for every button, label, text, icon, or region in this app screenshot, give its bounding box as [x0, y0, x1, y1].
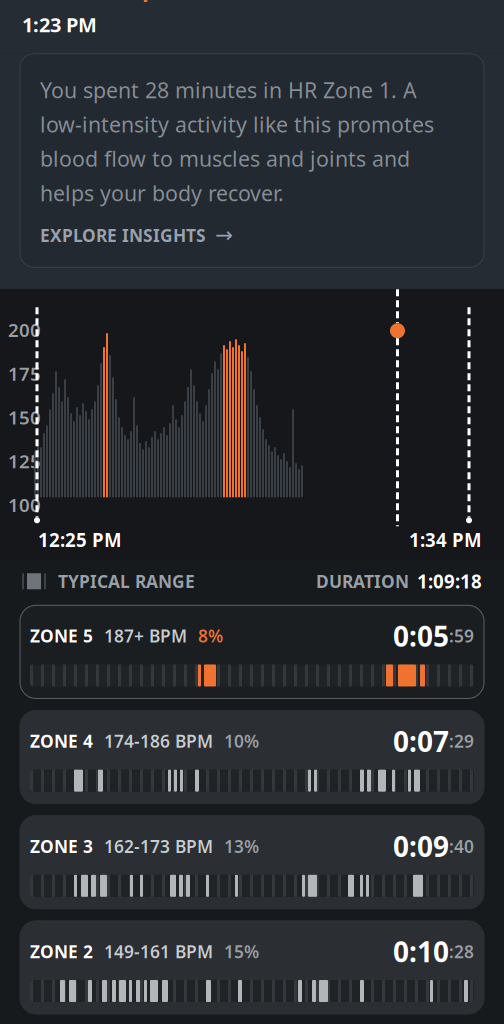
staticText: 175 — [8, 361, 41, 386]
staticText: 0:07 — [393, 722, 449, 760]
staticText: 100 — [8, 492, 41, 517]
staticText: :28 — [449, 940, 474, 963]
button[interactable]: ZONE 5 — [20, 605, 484, 698]
button[interactable]: ZONE 4 — [20, 710, 484, 804]
staticText: 149-161 BPM — [104, 940, 213, 963]
button[interactable]: You spent 28 minutes in HR Zone 1. A low… — [20, 54, 484, 267]
staticText: 125 — [8, 449, 41, 473]
staticText: :40 — [449, 835, 474, 858]
staticText: 1:09:18 — [417, 569, 482, 594]
staticText: 1:34 PM — [409, 527, 482, 552]
staticText: bpm — [128, 0, 178, 2]
staticText: 162-173 BPM — [104, 835, 213, 858]
staticText: TYPICAL RANGE — [58, 570, 195, 593]
staticText: 0:09 — [393, 828, 449, 865]
staticText: ZONE 3 — [30, 835, 93, 858]
staticText: You spent 28 minutes in HR Zone 1. A low… — [40, 76, 434, 207]
button[interactable]: ZONE 3 — [20, 816, 484, 909]
staticText: 174-186 BPM — [104, 729, 213, 752]
staticText: ZONE 5 — [30, 624, 93, 647]
staticText: :29 — [449, 729, 474, 752]
staticText: 13% — [224, 835, 259, 858]
staticText: 187+ BPM — [104, 624, 187, 647]
staticText: → — [215, 223, 233, 247]
staticText: :59 — [449, 624, 474, 647]
staticText: 200 — [8, 317, 41, 342]
staticText: DURATION — [316, 570, 409, 593]
button[interactable]: ZONE 2 — [20, 921, 484, 1014]
staticText: ZONE 4 — [30, 729, 93, 752]
staticText: 15% — [224, 940, 259, 963]
staticText: ZONE 2 — [30, 940, 93, 963]
staticText: 150 — [8, 405, 41, 430]
staticText: 0:10 — [393, 933, 449, 970]
staticText: 12:25 PM — [38, 527, 122, 552]
staticText: 10% — [224, 729, 259, 752]
staticText: 1:23 PM — [22, 11, 97, 38]
staticText: 0:05 — [393, 617, 449, 654]
staticText: 8% — [198, 624, 223, 647]
staticText: EXPLORE INSIGHTS — [40, 224, 206, 247]
